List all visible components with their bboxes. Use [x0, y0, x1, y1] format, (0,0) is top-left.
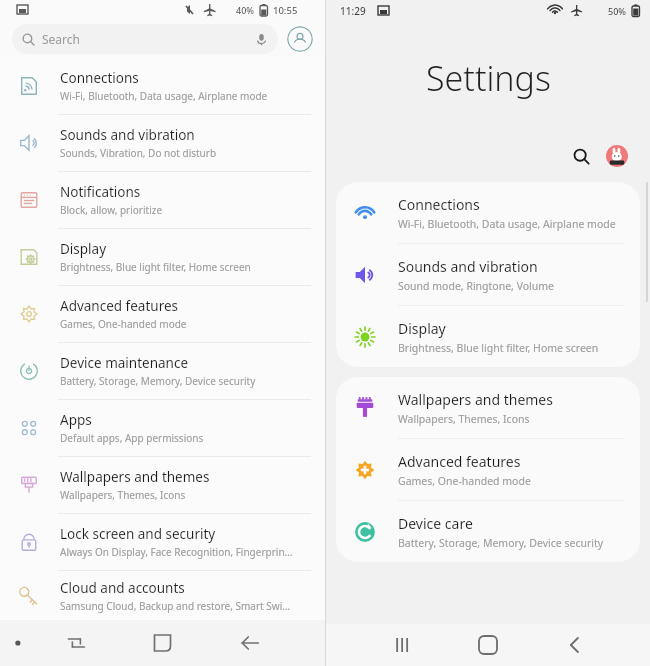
- button[interactable]: Sounds and vibration: [336, 244, 640, 305]
- staticText: Notifications: [60, 183, 141, 201]
- staticText: Wallpapers, Themes, Icons: [60, 488, 186, 502]
- staticText: Battery, Storage, Memory, Device securit…: [60, 374, 256, 388]
- button[interactable]: Wallpapers and themes: [336, 377, 640, 438]
- staticText: Samsung Cloud, Backup and restore, Smart…: [60, 599, 291, 613]
- staticText: Connections: [398, 195, 480, 214]
- staticText: Wallpapers and themes: [398, 390, 553, 409]
- button[interactable]: Device care: [336, 501, 640, 562]
- staticText: Block, allow, prioritize: [60, 203, 163, 217]
- button[interactable]: Lock screen and security: [0, 514, 325, 570]
- button[interactable]: Search: [12, 24, 278, 54]
- staticText: 40%: [236, 4, 254, 16]
- staticText: Wallpapers, Themes, Icons: [398, 412, 530, 426]
- staticText: Games, One-handed mode: [60, 317, 187, 331]
- button[interactable]: Display: [336, 306, 640, 367]
- staticText: Sounds, Vibration, Do not disturb: [60, 146, 217, 160]
- staticText: Sound mode, Ringtone, Volume: [398, 279, 555, 293]
- button[interactable]: Device maintenance: [0, 343, 325, 399]
- staticText: Connections: [60, 69, 139, 87]
- button[interactable]: Profile: [287, 26, 313, 52]
- button[interactable]: Advanced features: [0, 286, 325, 342]
- staticText: Sounds and vibration: [398, 257, 538, 276]
- staticText: Search: [42, 31, 80, 47]
- button[interactable]: Account: [606, 145, 628, 167]
- staticText: 50%: [608, 5, 626, 17]
- staticText: Advanced features: [60, 297, 179, 315]
- staticText: Brightness, Blue light filter, Home scre…: [398, 341, 599, 355]
- button[interactable]: Connections: [0, 58, 325, 114]
- button[interactable]: Notifications: [0, 172, 325, 228]
- staticText: Battery, Storage, Memory, Device securit…: [398, 536, 604, 550]
- button[interactable]: Connections: [336, 182, 640, 243]
- staticText: Lock screen and security: [60, 525, 216, 543]
- staticText: Device maintenance: [60, 354, 189, 372]
- staticText: Always On Display, Face Recognition, Fin…: [60, 545, 293, 559]
- staticText: Display: [60, 240, 107, 258]
- button[interactable]: Wallpapers and themes: [0, 457, 325, 513]
- button[interactable]: Advanced features: [336, 439, 640, 500]
- staticText: Default apps, App permissions: [60, 431, 204, 445]
- staticText: Wi-Fi, Bluetooth, Data usage, Airplane m…: [398, 217, 616, 231]
- button[interactable]: Apps: [0, 400, 325, 456]
- staticText: 10:55: [273, 4, 298, 17]
- staticText: Apps: [60, 411, 92, 429]
- staticText: Wallpapers and themes: [60, 468, 210, 486]
- staticText: Advanced features: [398, 452, 521, 471]
- staticText: Brightness, Blue light filter, Home scre…: [60, 260, 251, 274]
- staticText: Wi-Fi, Bluetooth, Data usage, Airplane m…: [60, 89, 268, 103]
- staticText: Device care: [398, 514, 473, 533]
- button[interactable]: Display: [0, 229, 325, 285]
- button[interactable]: Sounds and vibration: [0, 115, 325, 171]
- staticText: Sounds and vibration: [60, 126, 195, 144]
- staticText: Cloud and accounts: [60, 579, 185, 597]
- staticText: Settings: [426, 55, 551, 101]
- staticText: 11:29: [340, 4, 366, 18]
- staticText: Games, One-handed mode: [398, 474, 531, 488]
- button[interactable]: Cloud and accounts: [0, 571, 325, 620]
- button[interactable]: Search: [566, 141, 596, 171]
- staticText: Display: [398, 319, 446, 338]
